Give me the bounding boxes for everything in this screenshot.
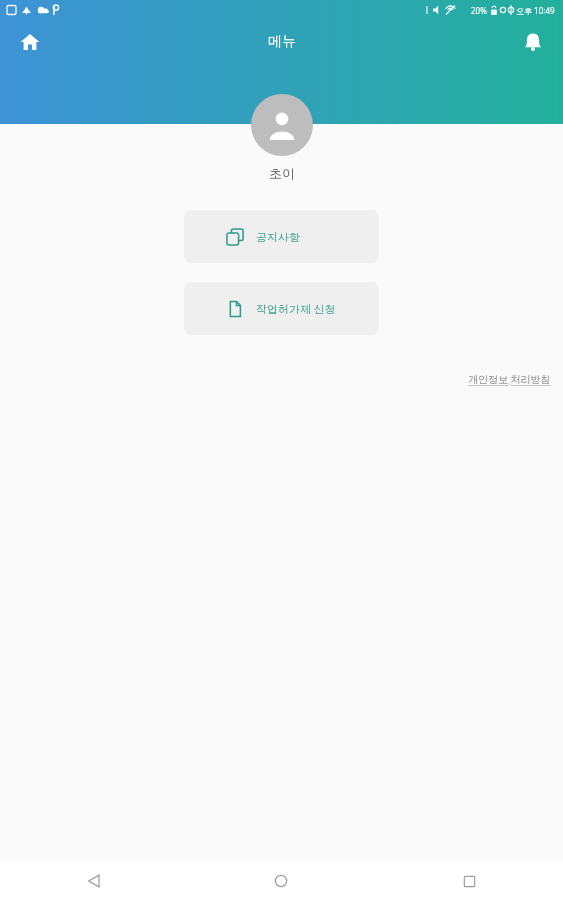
staticText: 작업허가제 신청 [256, 301, 336, 316]
button[interactable]: Profile photo [251, 94, 313, 156]
button[interactable]: Notifications [511, 20, 555, 64]
button[interactable]: Back [0, 862, 187, 900]
button[interactable]: 공지사항 [184, 210, 379, 263]
staticText: 초이 [269, 165, 295, 181]
button[interactable]: 작업허가제 신청 [184, 282, 379, 335]
staticText: 개인정보 처리방침 [468, 372, 551, 386]
staticText: 오후 10:49 [516, 5, 555, 16]
button[interactable]: Home [187, 862, 375, 900]
staticText: 공지사항 [256, 230, 300, 244]
button[interactable]: Home [8, 20, 52, 64]
staticText: 메뉴 [268, 33, 296, 51]
button[interactable]: Recents [375, 862, 563, 900]
button[interactable]: 개인정보 처리방침 [468, 372, 551, 386]
staticText: 20% [471, 5, 487, 16]
